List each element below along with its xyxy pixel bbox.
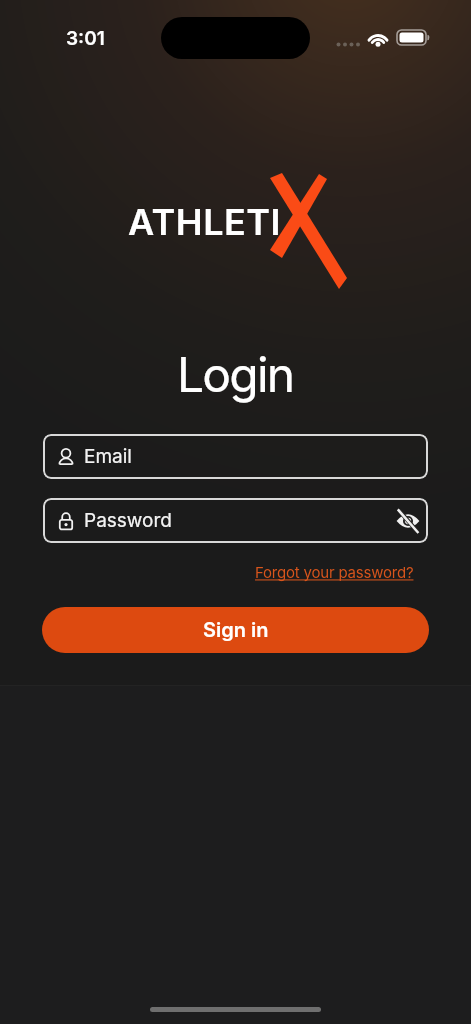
staticText: Forgot your password? [255, 563, 414, 581]
staticText: Sign in [203, 618, 269, 642]
button[interactable]: Email [43, 434, 428, 479]
staticText: Email [84, 445, 132, 468]
button[interactable]: Password [43, 498, 428, 543]
button[interactable]: Forgot your password? [255, 563, 414, 581]
staticText: Login [177, 345, 294, 403]
staticText: ATHLETI [128, 200, 282, 244]
staticText: 3:01 [66, 27, 105, 50]
button[interactable]: Sign in [42, 607, 429, 653]
button[interactable] [388, 498, 428, 543]
staticText: Password [84, 509, 172, 532]
